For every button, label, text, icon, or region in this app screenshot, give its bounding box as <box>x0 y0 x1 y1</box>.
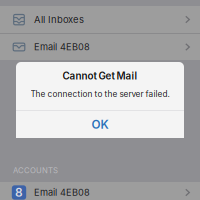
staticText: Email 4EB08 <box>34 41 90 52</box>
staticText: Cannot Get Mail <box>62 70 137 82</box>
button[interactable]: OK <box>16 111 184 138</box>
staticText: Email 4EB08 <box>34 187 90 198</box>
staticText: All Inboxes <box>34 14 84 25</box>
staticText: The connection to the server failed. <box>30 89 169 99</box>
button[interactable]: All Inboxes <box>0 6 200 33</box>
button[interactable]: 8 <box>0 182 200 200</box>
staticText: ACCOUNTS <box>13 166 58 175</box>
staticText: 8 <box>15 185 23 200</box>
staticText: OK <box>91 117 108 132</box>
button[interactable]: Email 4EB08 <box>0 34 200 60</box>
